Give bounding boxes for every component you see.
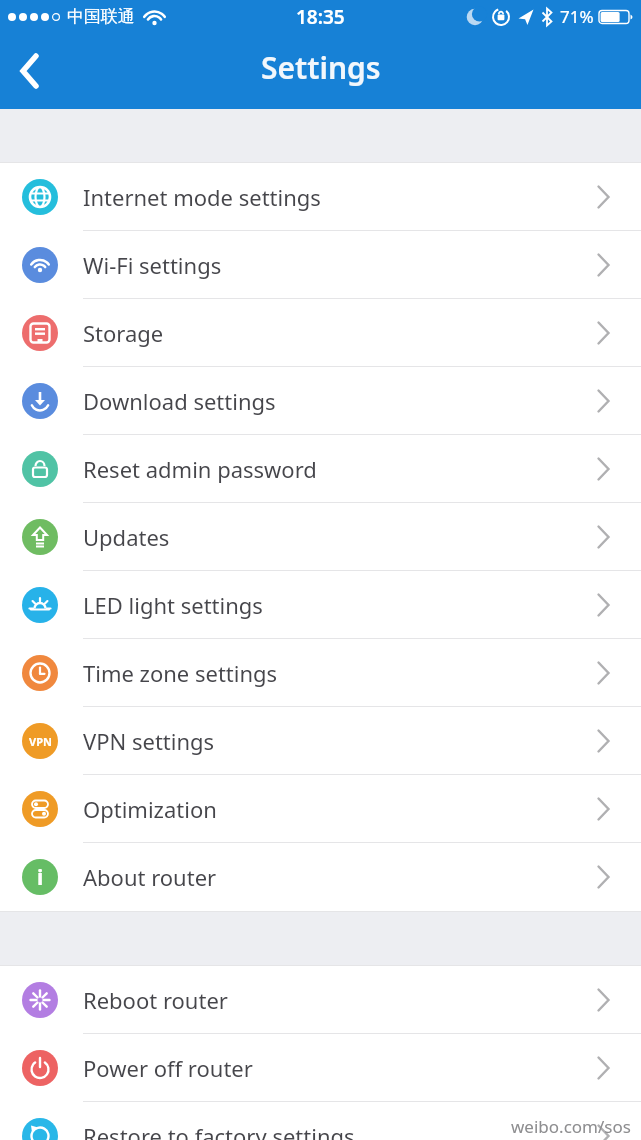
- button[interactable]: Updates: [0, 503, 641, 571]
- button[interactable]: i: [0, 843, 641, 911]
- button[interactable]: Power off router: [0, 1034, 641, 1102]
- button[interactable]: [19, 53, 40, 89]
- staticText: Restore to factory settings: [83, 1121, 355, 1140]
- button[interactable]: Optimization: [0, 775, 641, 843]
- staticText: Time zone settings: [83, 658, 278, 688]
- staticText: Internet mode settings: [83, 182, 321, 212]
- button[interactable]: Time zone settings: [0, 639, 641, 707]
- button[interactable]: Restore to factory settings: [0, 1102, 641, 1140]
- staticText: VPN settings: [83, 726, 215, 756]
- staticText: VPN: [29, 734, 52, 749]
- button[interactable]: Download settings: [0, 367, 641, 435]
- staticText: weibo.com/sos: [511, 1115, 631, 1138]
- staticText: i: [37, 863, 44, 892]
- button[interactable]: Reboot router: [0, 966, 641, 1034]
- button[interactable]: Storage: [0, 299, 641, 367]
- staticText: 71%: [560, 5, 594, 28]
- button[interactable]: VPN: [0, 707, 641, 775]
- button[interactable]: Wi-Fi settings: [0, 231, 641, 299]
- staticText: LED light settings: [83, 590, 263, 620]
- staticText: Updates: [83, 522, 170, 552]
- staticText: Reboot router: [83, 985, 228, 1015]
- button[interactable]: Reset admin password: [0, 435, 641, 503]
- button[interactable]: LED light settings: [0, 571, 641, 639]
- staticText: Download settings: [83, 386, 276, 416]
- button[interactable]: Internet mode settings: [0, 163, 641, 231]
- staticText: Storage: [83, 318, 164, 348]
- staticText: 18:35: [296, 4, 345, 30]
- staticText: Wi-Fi settings: [83, 250, 222, 280]
- staticText: About router: [83, 862, 217, 892]
- staticText: Optimization: [83, 794, 217, 824]
- staticText: Power off router: [83, 1053, 253, 1083]
- staticText: 中国联通: [67, 6, 135, 27]
- staticText: Reset admin password: [83, 454, 317, 484]
- staticText: Settings: [261, 47, 381, 88]
